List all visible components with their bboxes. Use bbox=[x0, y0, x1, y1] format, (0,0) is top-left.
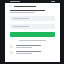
button[interactable] bbox=[10, 50, 55, 55]
button[interactable]: Continue bbox=[10, 32, 55, 37]
button[interactable]: Back bbox=[8, 4, 12, 8]
button[interactable] bbox=[10, 24, 55, 29]
button[interactable]: More options bbox=[54, 5, 57, 8]
button[interactable] bbox=[10, 44, 55, 49]
button[interactable] bbox=[10, 16, 55, 21]
